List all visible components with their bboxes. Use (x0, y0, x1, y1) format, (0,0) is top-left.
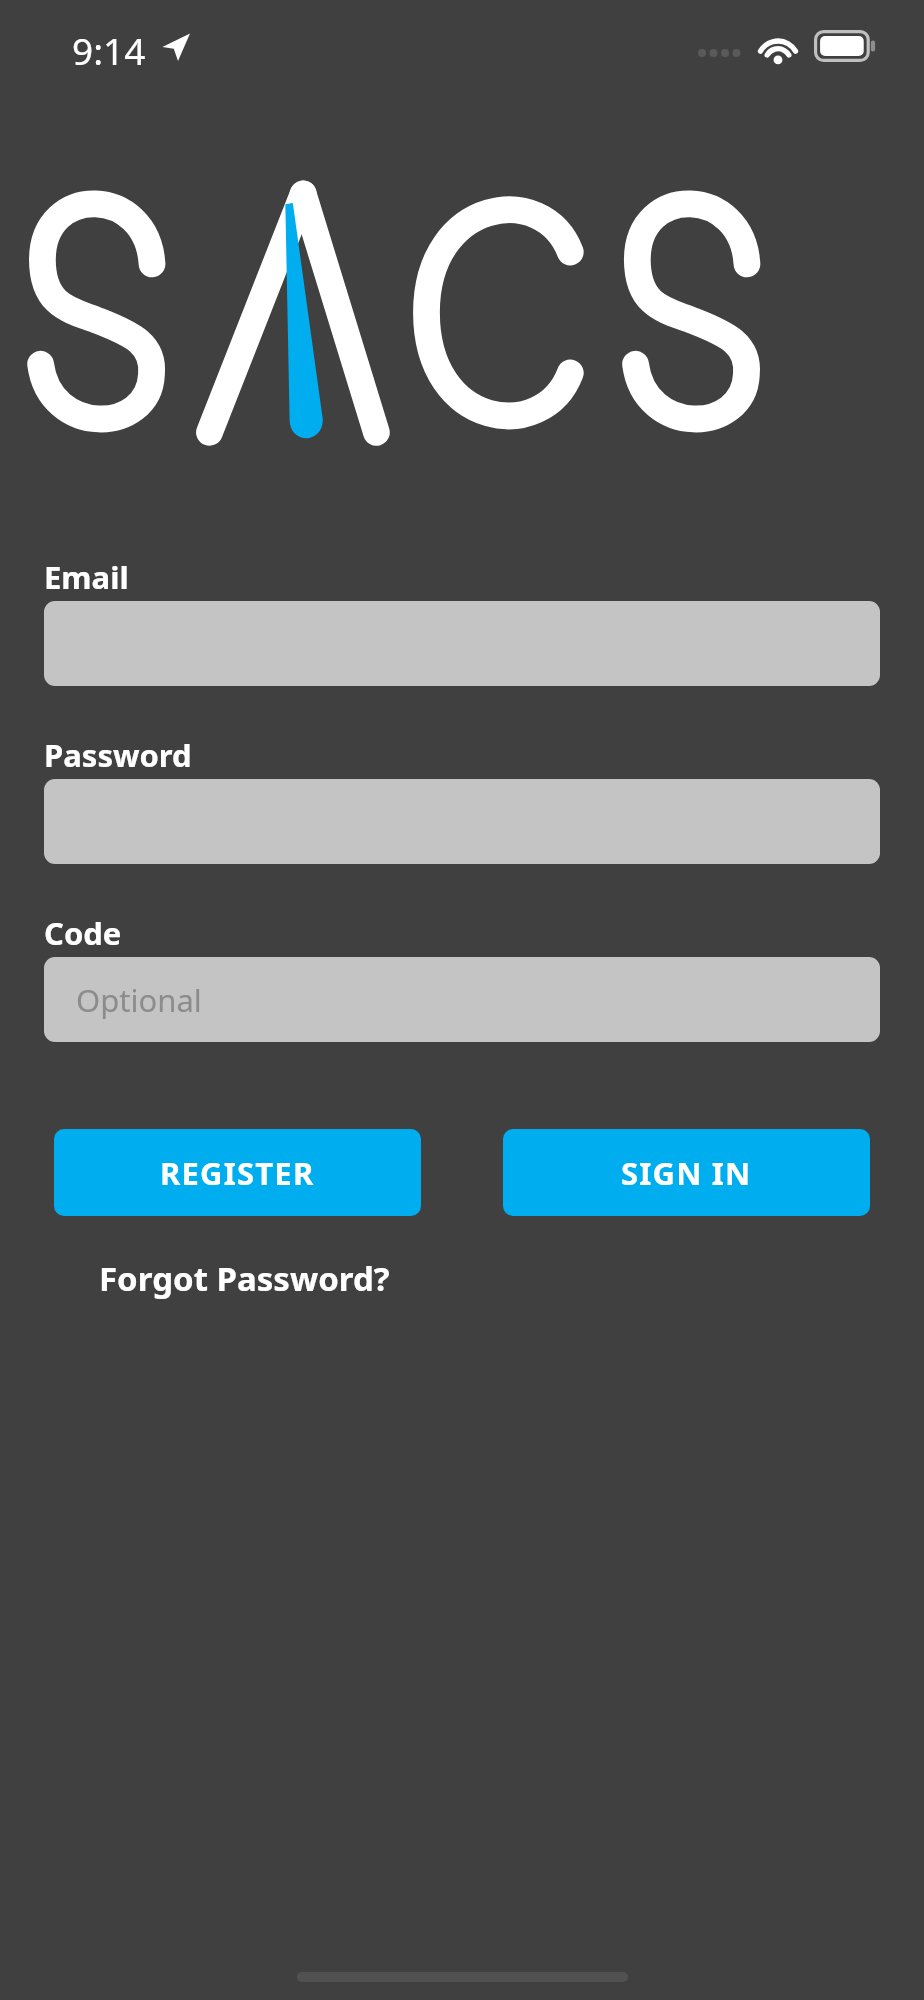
staticText: 9:14 (72, 25, 146, 75)
button[interactable] (44, 601, 880, 686)
staticText: Password (44, 734, 192, 776)
staticText: REGISTER (160, 1152, 315, 1194)
staticText: SIGN IN (621, 1152, 752, 1194)
button[interactable]: Optional (44, 957, 880, 1042)
staticText: Email (44, 556, 129, 598)
staticText: Optional (76, 979, 202, 1021)
button[interactable]: SIGN IN (503, 1129, 870, 1216)
staticText: Forgot Password? (99, 1256, 390, 1301)
button[interactable] (44, 779, 880, 864)
button[interactable]: REGISTER (54, 1129, 421, 1216)
button[interactable]: Forgot Password? (84, 1249, 380, 1307)
staticText: Code (44, 912, 122, 954)
